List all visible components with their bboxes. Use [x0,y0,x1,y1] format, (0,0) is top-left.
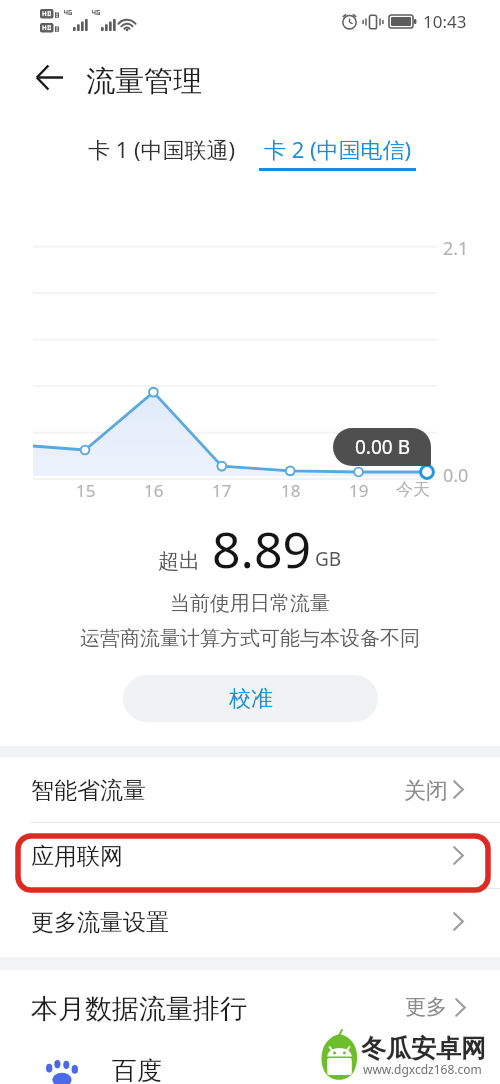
staticText: www.dgxcdz168.com [363,1061,482,1077]
staticText: 19 [349,479,369,502]
staticText: 本月数据流量排行 [31,992,247,1026]
staticText: 校准 [229,685,273,713]
staticText: 更多流量设置 [31,908,169,937]
staticText: 当前使用日常流量 [170,591,330,616]
staticText: 冬瓜安卓网 [361,1033,486,1064]
staticText: 关闭 [404,777,448,805]
button[interactable]: 应用联网 [0,823,500,888]
staticText: 18 [281,479,301,502]
staticText: 10:43 [423,10,467,33]
button[interactable]: 智能省流量 [0,757,500,822]
button[interactable]: 更多流量设置 [0,889,500,954]
staticText: 17 [212,479,232,502]
staticText: 15 [76,479,96,502]
button[interactable]: 校准 [123,675,378,722]
staticText: 应用联网 [31,842,123,871]
button[interactable]: 更多 [405,994,466,1020]
button[interactable]: 百度 [0,1044,500,1084]
staticText: 16 [144,479,164,502]
staticText: 超出 [158,548,200,574]
button[interactable]: Back [27,55,71,99]
staticText: 智能省流量 [31,776,146,805]
staticText: 流量管理 [86,63,202,100]
button[interactable]: 卡 1 (中国联通) [76,128,248,170]
staticText: 卡 2 (中国电信) [264,134,412,164]
button[interactable]: 卡 2 (中国电信) [251,128,425,170]
staticText: 百度 [112,1055,162,1084]
staticText: 0.0 [443,463,469,488]
staticText: 今天 [396,479,430,500]
staticText: 8.89 [212,515,312,583]
staticText: 0.00 B [355,434,410,460]
staticText: 运营商流量计算方式可能与本设备不同 [80,626,420,651]
staticText: 更多 [405,994,447,1020]
staticText: 卡 1 (中国联通) [88,134,236,164]
staticText: 2.1 [443,236,469,261]
staticText: GB [315,546,342,572]
